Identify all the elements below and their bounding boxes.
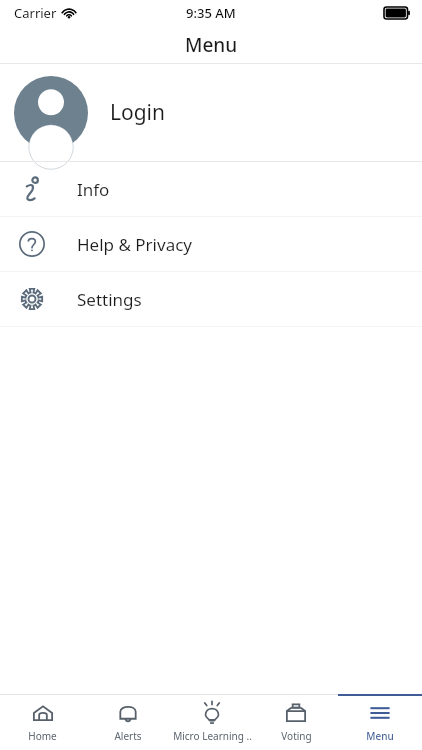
staticText: Info — [77, 178, 110, 201]
button[interactable]: Alerts — [85, 694, 170, 750]
button[interactable]: Info — [0, 162, 422, 216]
button[interactable]: Login — [0, 64, 422, 161]
staticText: Login — [110, 98, 166, 127]
other: Alerts — [116, 701, 140, 725]
staticText: Voting — [281, 729, 312, 743]
other: Voting — [284, 701, 308, 725]
staticText: Alerts — [114, 729, 142, 743]
button[interactable]: Help & Privacy — [0, 217, 422, 271]
other: Micro Learning — [200, 701, 224, 725]
button[interactable]: Menu — [338, 694, 422, 750]
button[interactable]: Settings — [0, 272, 422, 326]
staticText: Menu — [185, 32, 238, 58]
staticText: Carrier — [14, 4, 57, 22]
staticText: Home — [28, 729, 57, 743]
staticText: Settings — [77, 288, 142, 311]
staticText: Micro Learning .. — [173, 729, 252, 743]
staticText: 9:35 AM — [186, 4, 236, 22]
staticText: Help & Privacy — [77, 233, 193, 256]
button[interactable]: Micro Learning — [170, 694, 254, 750]
staticText: Menu — [366, 729, 394, 743]
other: Menu — [368, 701, 392, 725]
button[interactable]: Home — [0, 694, 85, 750]
other: Home — [31, 701, 55, 725]
button[interactable]: Voting — [254, 694, 338, 750]
